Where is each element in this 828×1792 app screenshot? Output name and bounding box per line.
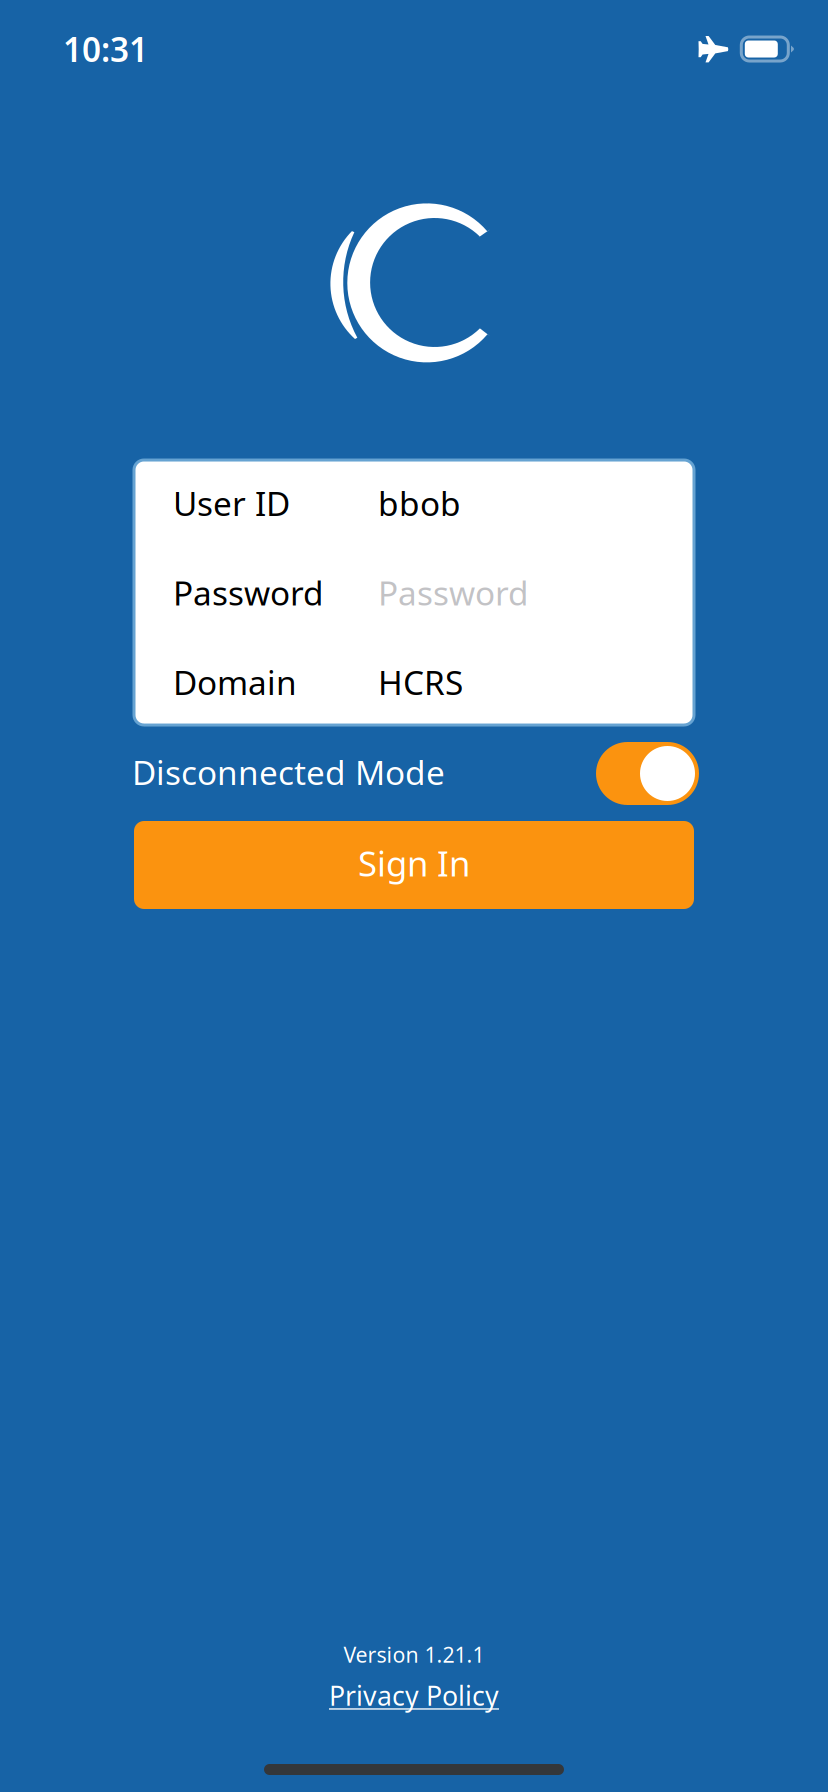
staticText: Sign In (358, 840, 470, 886)
button[interactable]: Sign In (134, 821, 694, 909)
staticText: HCRS (378, 660, 463, 704)
staticText: User ID (173, 481, 290, 525)
button[interactable]: User ID (134, 459, 694, 547)
button[interactable]: Privacy Policy (309, 1672, 519, 1719)
staticText: Disconnected Mode (132, 750, 445, 794)
button[interactable]: Password (134, 548, 694, 637)
staticText: Password (378, 570, 529, 615)
staticText: Privacy Policy (329, 1678, 499, 1713)
button[interactable]: Domain (134, 638, 694, 726)
staticText: 10:31 (63, 27, 148, 71)
staticText: bbob (378, 481, 461, 525)
button[interactable]: Disconnected Mode (596, 742, 699, 805)
staticText: Domain (173, 660, 297, 704)
staticText: Version 1.21.1 (343, 1640, 484, 1669)
staticText: Password (173, 570, 324, 615)
